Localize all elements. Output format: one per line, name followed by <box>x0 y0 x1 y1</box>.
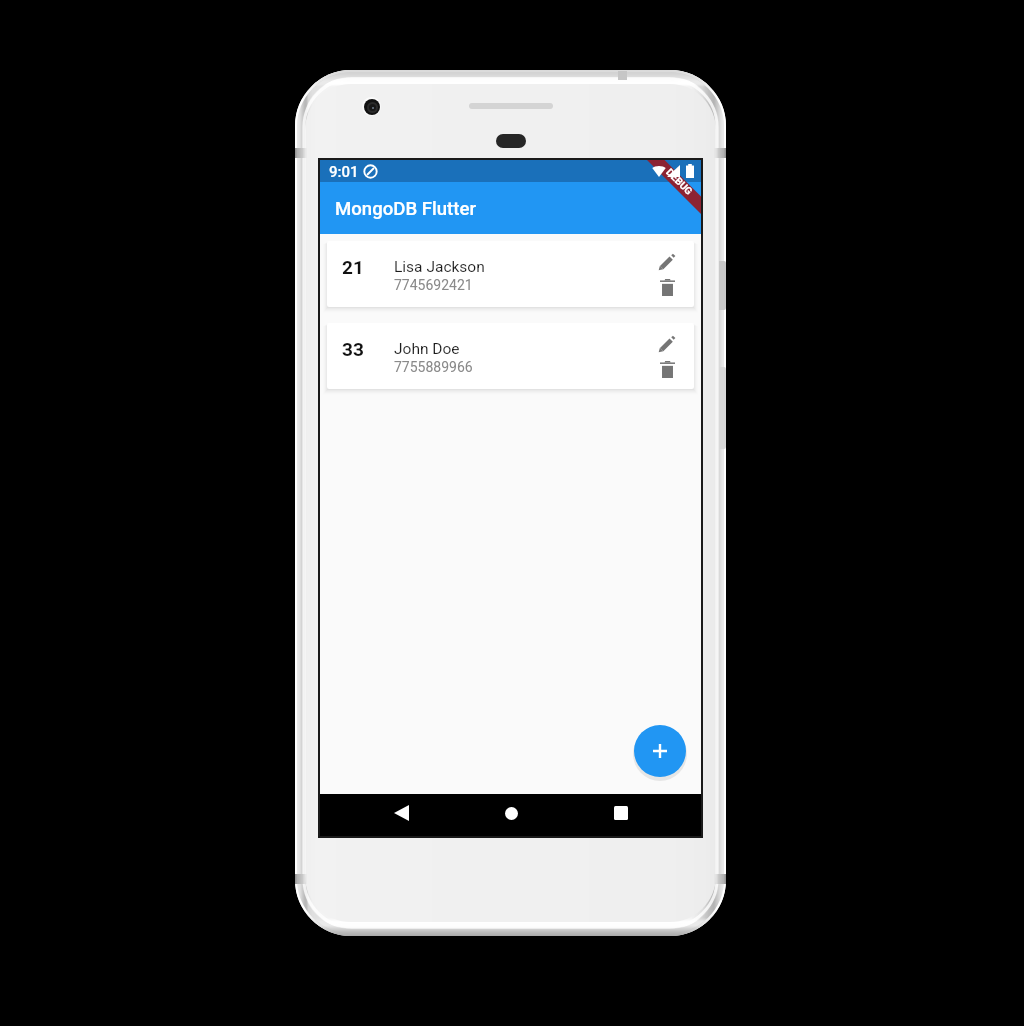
button[interactable]: Edit <box>654 250 678 274</box>
staticText: 7745692421 <box>394 277 473 293</box>
staticText: 9:01 <box>329 163 359 181</box>
button[interactable]: Recents <box>600 792 642 834</box>
staticText: 7755889966 <box>394 359 473 375</box>
staticText: John Doe <box>394 340 460 358</box>
staticText: DEBUG <box>663 166 694 197</box>
button[interactable]: MongoDB Flutter <box>320 182 701 234</box>
button[interactable]: Back <box>380 792 422 834</box>
button[interactable]: 33 <box>327 323 694 389</box>
button[interactable]: 21 <box>327 241 694 307</box>
staticText: 21 <box>342 256 364 278</box>
button[interactable]: Delete <box>655 357 679 381</box>
button[interactable]: Delete <box>655 275 679 299</box>
button[interactable]: Edit <box>654 332 678 356</box>
button[interactable]: Home <box>490 792 532 834</box>
staticText: 33 <box>342 338 364 360</box>
staticText: MongoDB Flutter <box>335 198 476 220</box>
button[interactable]: Add <box>634 725 686 777</box>
staticText: Lisa Jackson <box>394 258 485 276</box>
